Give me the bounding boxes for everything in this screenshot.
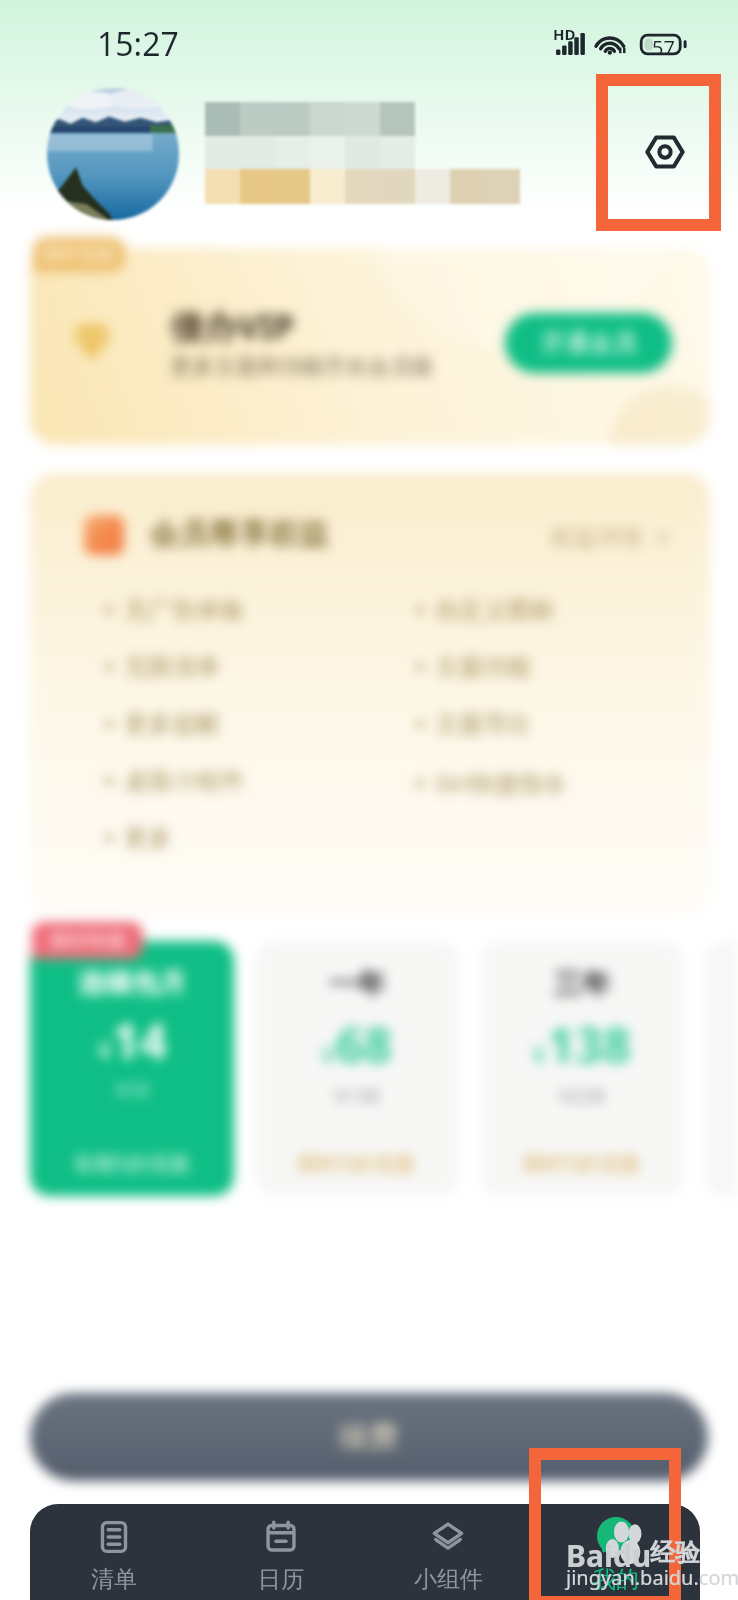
staticText: ¥ [532,1037,547,1071]
button[interactable]: Settings [633,120,697,184]
staticText: ¥138 [334,1082,380,1109]
staticText: 主题导出 [435,709,531,739]
staticText: 三年 [553,966,611,1003]
button[interactable]: 续费 [30,1393,708,1481]
staticText: jingyan.baidu.com [566,1564,738,1591]
staticText: 无限清单 [124,652,220,682]
staticText: 经验 [650,1537,700,1568]
staticText: 限时优惠 [43,243,115,266]
staticText: HD [553,24,576,44]
staticText: 57 [652,34,675,61]
button[interactable]: 开通会员 [505,313,672,373]
staticText: 主题功能 [435,652,531,682]
button[interactable]: 日历 [197,1504,364,1600]
staticText: 更多 [124,823,172,853]
button[interactable]: 清单 [30,1504,197,1600]
staticText: Baidu [566,1535,652,1576]
staticText: 更多主题和功能尽在会员版 [170,353,434,381]
staticText: 小组件 [414,1565,483,1594]
staticText: 14 [112,1008,167,1073]
staticText: 自定义图标 [435,595,555,625]
staticText: 连续包月 [78,966,186,1000]
button[interactable]: 权益详情 [551,519,672,556]
staticText: 一年 [328,966,386,1003]
staticText: ¥ [98,1033,112,1066]
button[interactable]: 借办VIP [30,248,710,445]
staticText: 我的 [593,1565,639,1594]
staticText: 续费 [339,1418,399,1456]
button[interactable]: 小组件 [364,1504,532,1600]
staticText: 无广告体验 [124,595,244,625]
button[interactable]: 连续包月 [30,941,234,1196]
staticText: ¥18 [116,1077,149,1103]
staticText: 限时特惠 [50,929,126,953]
staticText: 15:27 [97,22,179,66]
staticText: 更多提醒 [124,709,220,739]
staticText: 会员尊享权益 [149,515,329,553]
staticText: 68 [336,1011,393,1078]
button[interactable]: 我的 [532,1504,700,1600]
staticText: Siri快捷指令 [435,766,567,799]
staticText: 限时5折优惠 [298,1149,416,1178]
staticText: 借办VIP [170,303,295,349]
staticText: ¥228 [559,1082,605,1109]
staticText: 清单 [91,1565,137,1594]
staticText: 138 [547,1011,632,1078]
staticText: 开通会员 [541,328,637,358]
staticText: 权益详情 [551,523,643,552]
staticText: 首期5折优惠 [73,1149,191,1178]
staticText: ¥ [321,1037,336,1071]
staticText: 日历 [258,1565,304,1594]
staticText: 桌面小组件 [124,766,244,796]
button[interactable]: 三年 [480,941,684,1196]
staticText: 限时5折优惠 [523,1149,641,1178]
button[interactable]: 一年 [255,941,459,1196]
